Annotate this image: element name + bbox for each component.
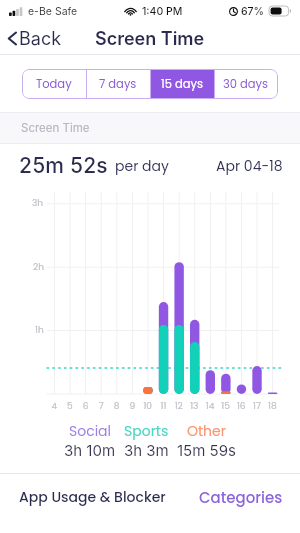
staticText: Screen Time [95, 28, 205, 50]
button[interactable]: Sports [124, 421, 169, 459]
staticText: Other [187, 421, 226, 441]
staticText: 1:40 PM [142, 5, 183, 18]
staticText: Back [19, 28, 62, 50]
staticText: e-Be Safe [28, 5, 78, 18]
staticText: Apr 04-18 [216, 156, 283, 176]
staticText: App Usage & Blocker [19, 487, 166, 507]
staticText: 3h 10m [64, 441, 116, 459]
button[interactable]: Today [22, 69, 86, 99]
button[interactable]: 15 days [150, 69, 214, 99]
button[interactable]: 7 days [86, 69, 150, 99]
staticText: Sports [124, 421, 169, 441]
staticText: 67% [241, 5, 265, 18]
button[interactable]: Other [177, 421, 236, 459]
button[interactable]: 30 days [214, 69, 278, 99]
staticText: 3h 3m [124, 441, 169, 459]
button[interactable]: App Usage & Blocker [0, 478, 174, 516]
button[interactable]: Categories [191, 478, 300, 517]
staticText: Categories [199, 487, 283, 508]
staticText: Social [69, 421, 112, 441]
staticText: 7 days [99, 76, 137, 92]
staticText: 25m 52s [19, 153, 108, 178]
staticText: Today [36, 76, 72, 92]
staticText: per day [115, 156, 169, 176]
staticText: Screen Time [21, 121, 90, 135]
staticText: 15 days [161, 76, 203, 92]
button[interactable]: Social [64, 421, 116, 459]
staticText: 30 days [223, 76, 269, 92]
staticText: 15m 59s [177, 441, 236, 459]
button[interactable]: Back [0, 22, 70, 55]
